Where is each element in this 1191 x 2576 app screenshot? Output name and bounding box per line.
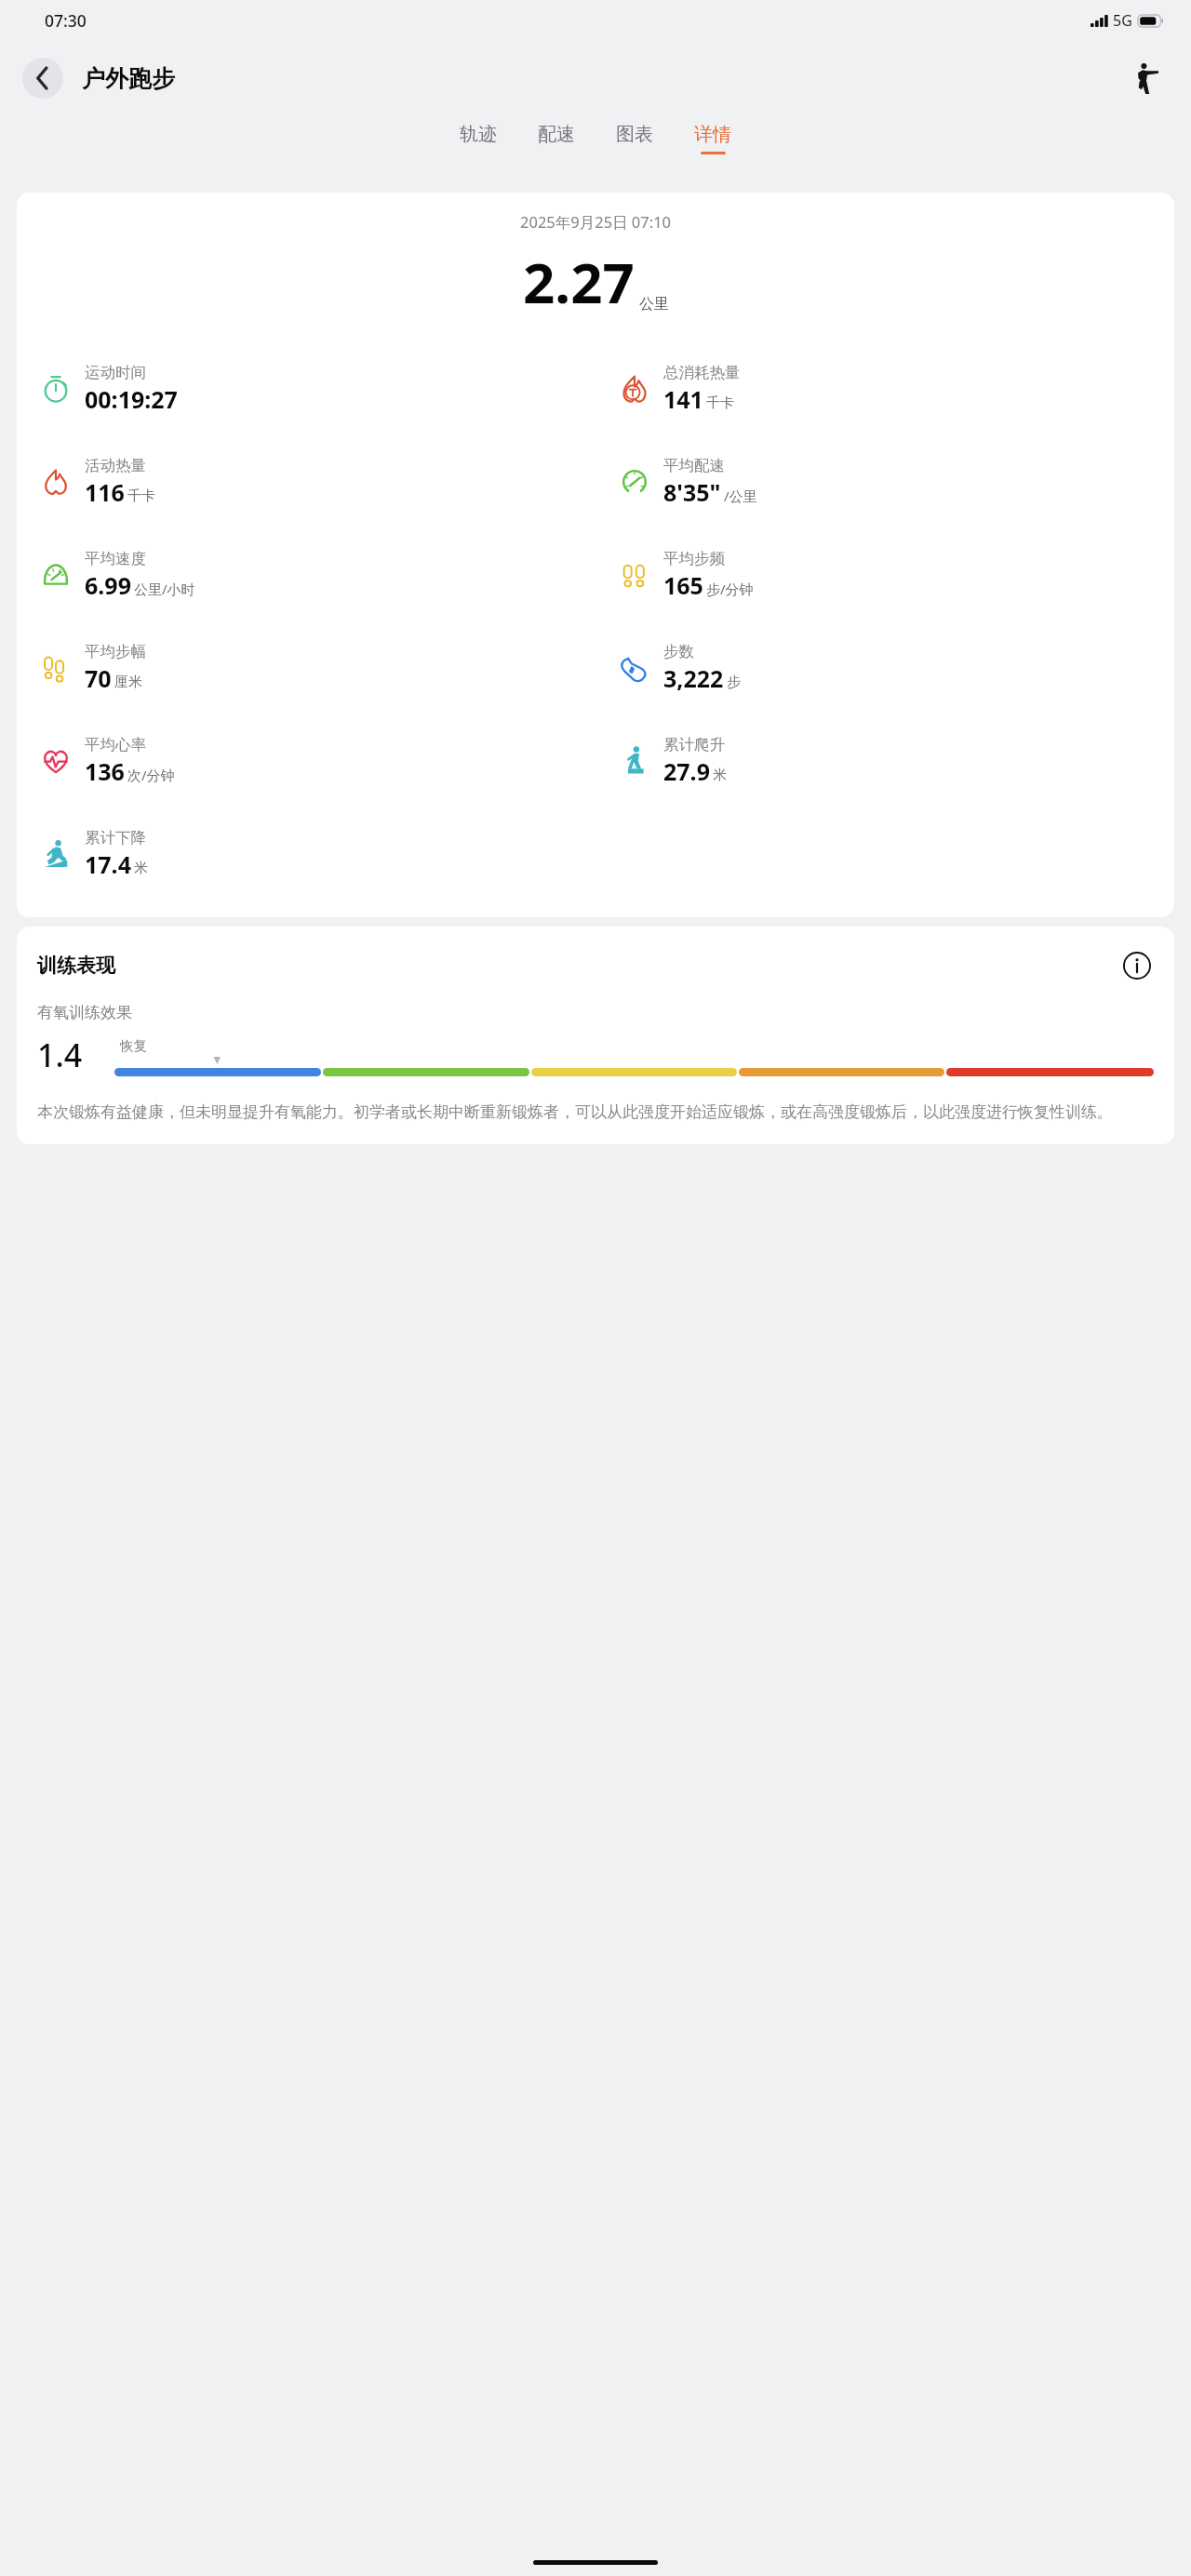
button[interactable]: 平均速度 [17,528,595,621]
staticText: 165 [663,569,703,601]
button[interactable]: 平均心率 [17,714,595,808]
staticText: 米 [134,860,148,877]
staticText: 步 [727,674,741,691]
staticText: 恢复 [120,1037,147,1054]
button[interactable]: 配速 [529,115,584,162]
staticText: 轨迹 [460,123,497,146]
staticText: 训练表现 [37,954,115,978]
staticText: 平均步幅 [85,642,146,661]
staticText: 累计爬升 [663,735,725,754]
staticText: 1.4 [37,1034,83,1076]
button[interactable]: 总消耗热量 [595,342,1174,435]
staticText: 活动热量 [85,456,146,475]
staticText: 116 [85,476,125,508]
staticText: 2025年9月25日 07:10 [520,211,672,233]
staticText: 27.9 [663,755,710,787]
staticText: 公里 [639,295,669,314]
staticText: 平均心率 [85,735,146,754]
staticText: 米 [713,767,727,784]
staticText: 详情 [694,123,731,146]
staticText: 总消耗热量 [663,363,741,382]
staticText: /公里 [724,487,757,505]
staticText: 6.99 [85,569,131,601]
staticText: 70 [85,662,112,694]
button[interactable]: 返回 [22,58,63,99]
staticText: 141 [663,383,703,415]
button[interactable]: 步数 [595,621,1174,714]
staticText: 累计下降 [85,828,146,848]
button[interactable]: 平均步幅 [17,621,595,714]
staticText: 户外跑步 [82,64,175,93]
button[interactable]: 轨迹 [450,115,506,162]
staticText: 千卡 [706,394,734,412]
button[interactable]: 运动类型 [1126,58,1167,99]
staticText: 平均步频 [663,549,725,568]
button[interactable]: 平均步频 [595,528,1174,621]
staticText: 步数 [663,642,694,661]
button[interactable]: 累计下降 [17,808,595,901]
staticText: 17.4 [85,848,131,880]
staticText: 平均速度 [85,549,146,568]
button[interactable]: 累计爬升 [595,714,1174,808]
staticText: 00:19:27 [85,383,178,415]
button[interactable]: 活动热量 [17,435,595,528]
staticText: 运动时间 [85,363,146,382]
staticText: 8'35" [663,476,721,508]
staticText: 07:30 [45,9,87,32]
button[interactable]: 详情 [685,115,741,162]
staticText: 图表 [616,123,653,146]
button[interactable]: 运动时间 [17,342,595,435]
staticText: 136 [85,755,125,787]
staticText: 次/分钟 [127,766,175,784]
staticText: 厘米 [114,674,142,691]
staticText: 配速 [538,123,575,146]
staticText: 有氧训练效果 [37,1003,132,1022]
staticText: 千卡 [127,487,155,505]
button[interactable]: 平均配速 [595,435,1174,528]
button[interactable]: 说明 [1120,949,1154,982]
staticText: 3,222 [663,662,724,694]
staticText: 平均配速 [663,456,725,475]
staticText: 公里/小时 [134,580,195,598]
staticText: 步/分钟 [706,580,754,598]
staticText: 2.27 [523,244,635,320]
staticText: 本次锻炼有益健康，但未明显提升有氧能力。初学者或长期中断重新锻炼者，可以从此强度… [37,1102,1113,1122]
button[interactable]: 图表 [607,115,662,162]
staticText: 5G [1113,10,1132,31]
